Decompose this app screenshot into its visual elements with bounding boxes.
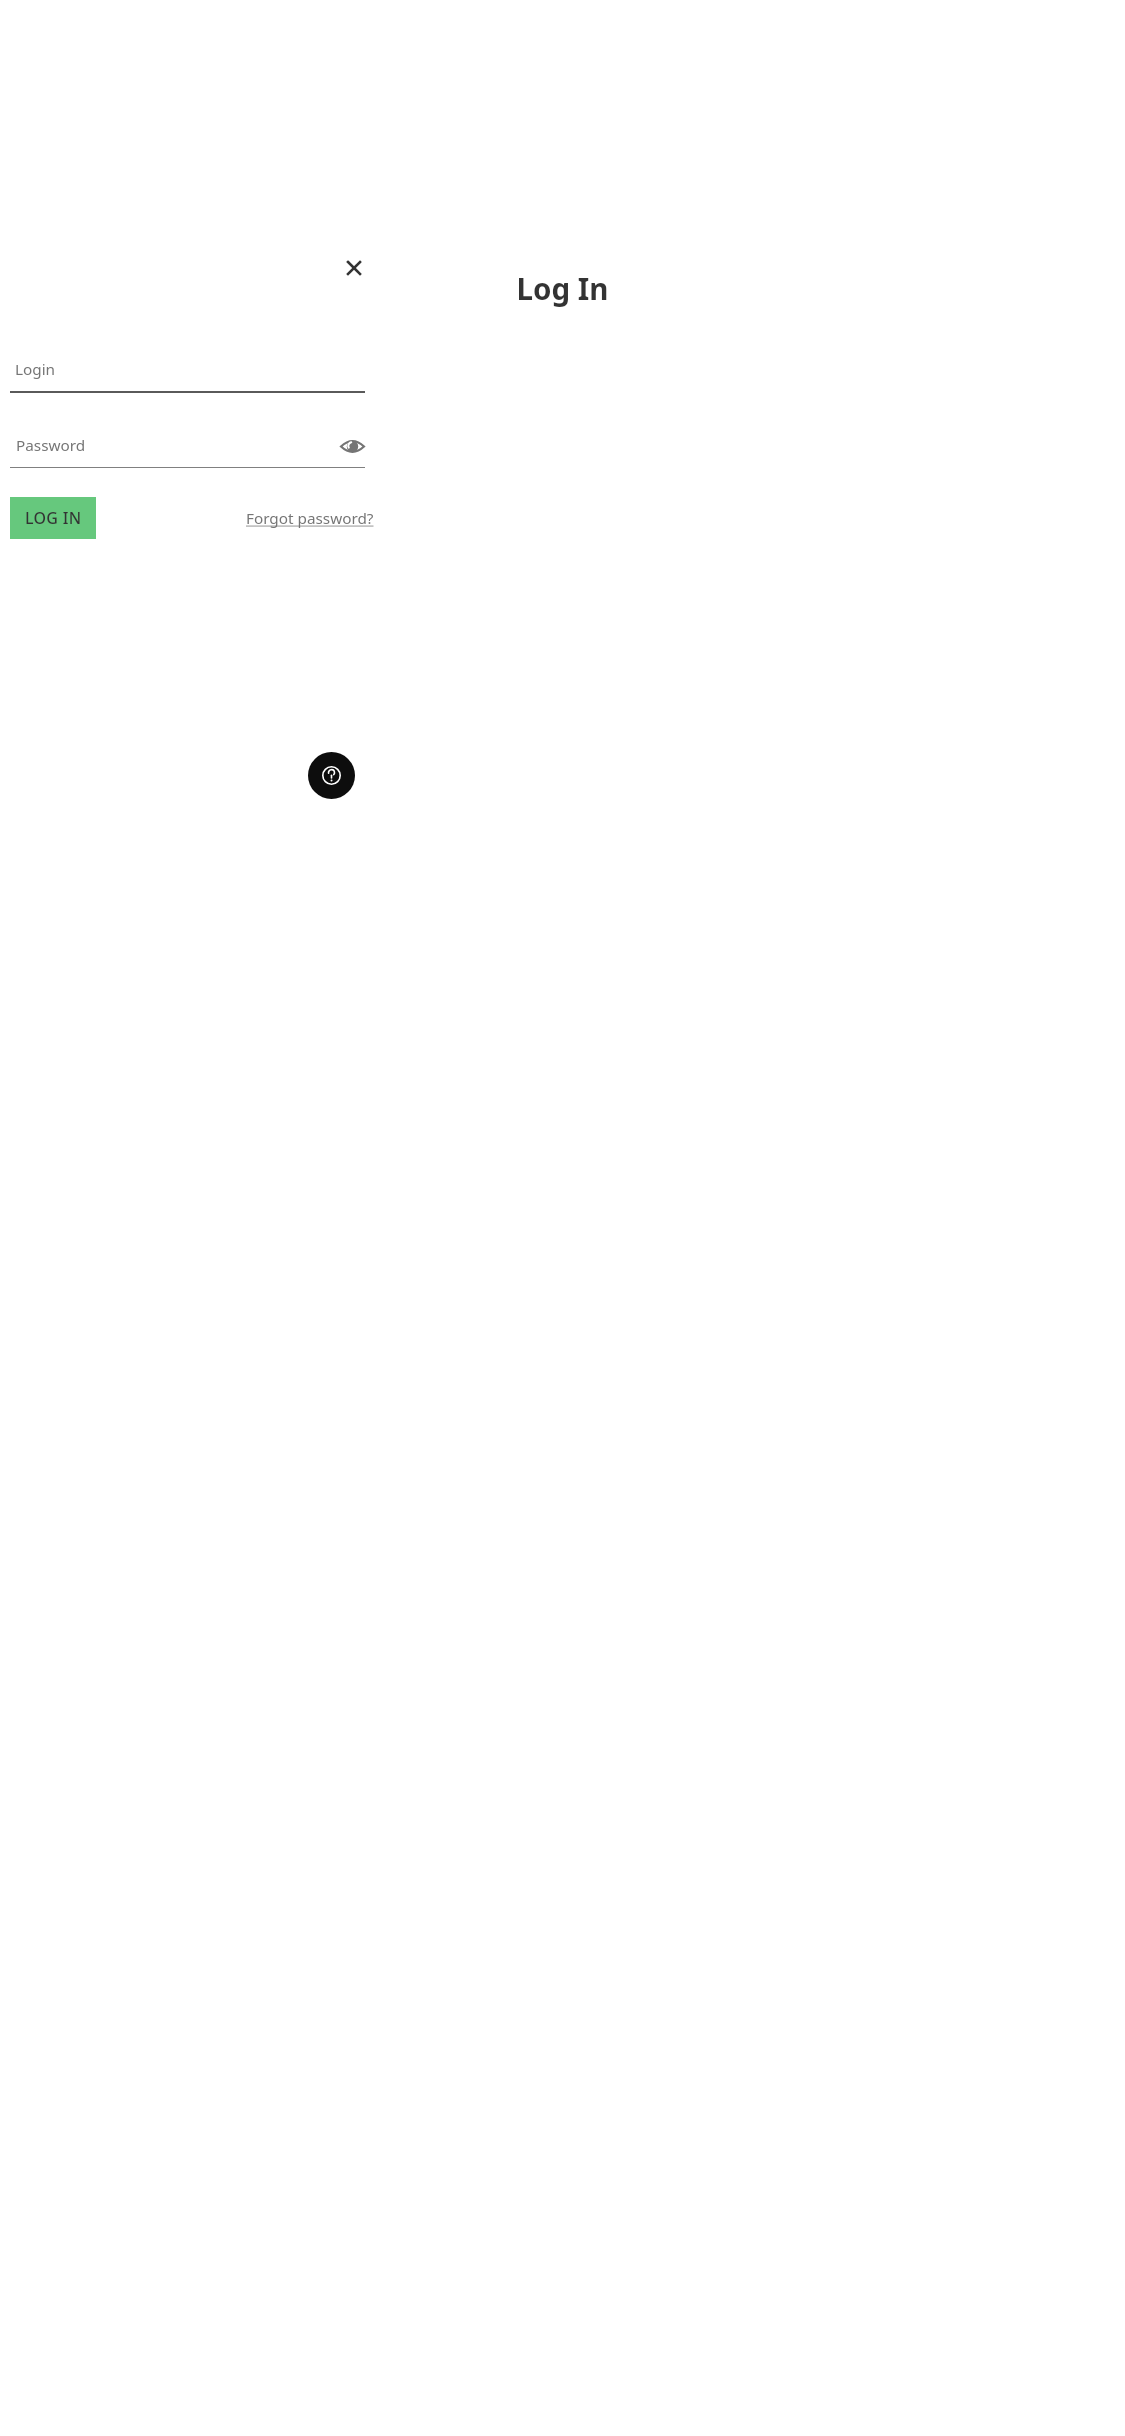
- staticText: LOG IN: [25, 507, 82, 529]
- button[interactable]: Close: [331, 245, 377, 291]
- button[interactable]: Forgot password?: [246, 505, 374, 531]
- staticText: Log In: [0, 268, 1125, 308]
- button[interactable]: Help: [308, 752, 355, 799]
- button[interactable]: Password: [10, 427, 365, 471]
- button[interactable]: Login: [10, 351, 365, 393]
- staticText: Forgot password?: [246, 508, 374, 529]
- staticText: Password: [16, 435, 86, 456]
- staticText: Login: [15, 359, 56, 380]
- button[interactable]: LOG IN: [10, 497, 96, 539]
- button[interactable]: Show password: [330, 424, 374, 468]
